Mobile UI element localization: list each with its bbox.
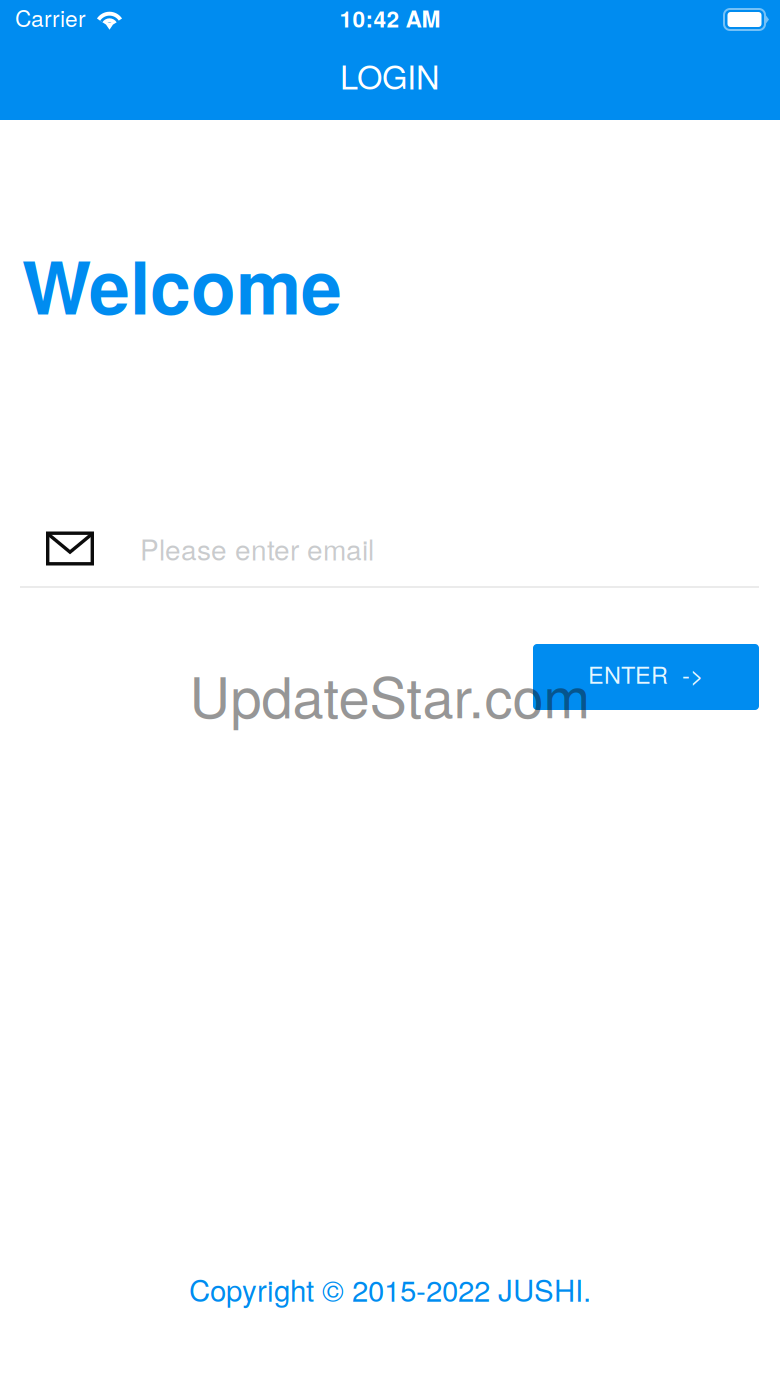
button[interactable]: ENTER -> <box>533 644 759 710</box>
staticText: Copyright © 2015-2022 JUSHI. <box>189 1268 591 1310</box>
staticText: LOGIN <box>340 52 440 99</box>
staticText: 10:42 AM <box>339 2 440 34</box>
staticText: Please enter email <box>140 528 374 569</box>
staticText: ENTER -> <box>588 657 704 690</box>
staticText: Welcome <box>22 232 342 337</box>
staticText: UpdateStar.com <box>189 654 590 734</box>
staticText: Carrier <box>15 1 86 33</box>
button[interactable]: Please enter email <box>0 520 780 576</box>
